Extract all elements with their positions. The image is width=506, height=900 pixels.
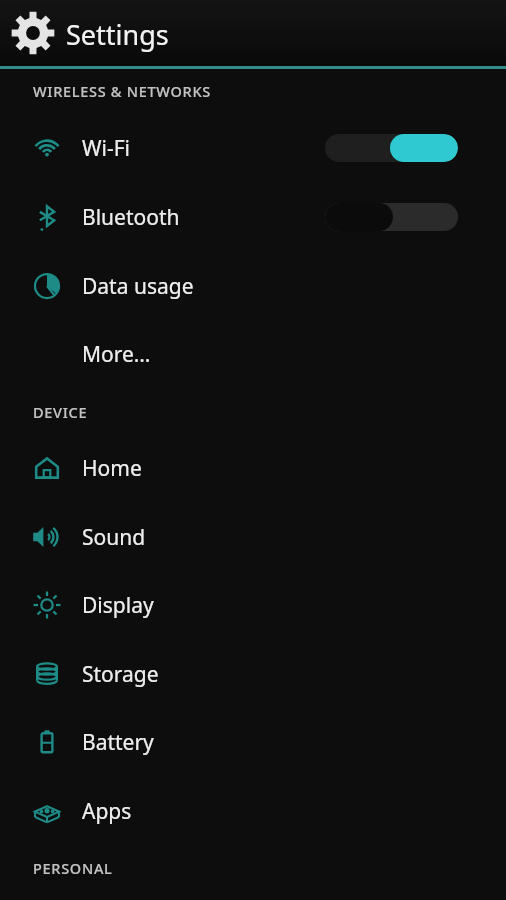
button[interactable]: Battery — [0, 708, 506, 776]
button[interactable]: Display — [0, 571, 506, 639]
button[interactable]: Wi-Fi — [0, 114, 506, 182]
staticText: More… — [82, 340, 151, 369]
button[interactable]: Data usage — [0, 252, 506, 320]
staticText: Home — [82, 454, 142, 483]
staticText: Apps — [82, 797, 132, 826]
button[interactable]: Sound — [0, 503, 506, 571]
button[interactable]: Storage — [0, 640, 506, 708]
button[interactable]: Apps — [0, 777, 506, 845]
staticText: Wi-Fi — [82, 134, 131, 163]
button[interactable]: Settings — [0, 0, 506, 66]
staticText: PERSONAL — [33, 858, 113, 878]
other: Settings — [10, 10, 56, 56]
staticText: Battery — [82, 728, 154, 757]
staticText: DEVICE — [33, 402, 88, 422]
button[interactable]: Home — [0, 434, 506, 502]
staticText: WIRELESS & NETWORKS — [33, 81, 211, 101]
staticText: Settings — [66, 16, 169, 53]
button[interactable]: More… — [0, 320, 506, 388]
button[interactable]: Bluetooth — [0, 183, 506, 251]
button[interactable]: Switch on — [325, 134, 458, 162]
staticText: Display — [82, 591, 154, 620]
staticText: Storage — [82, 660, 159, 689]
staticText: Sound — [82, 523, 146, 552]
staticText: Data usage — [82, 272, 194, 301]
staticText: Bluetooth — [82, 203, 180, 232]
button[interactable]: Switch off — [325, 203, 458, 231]
